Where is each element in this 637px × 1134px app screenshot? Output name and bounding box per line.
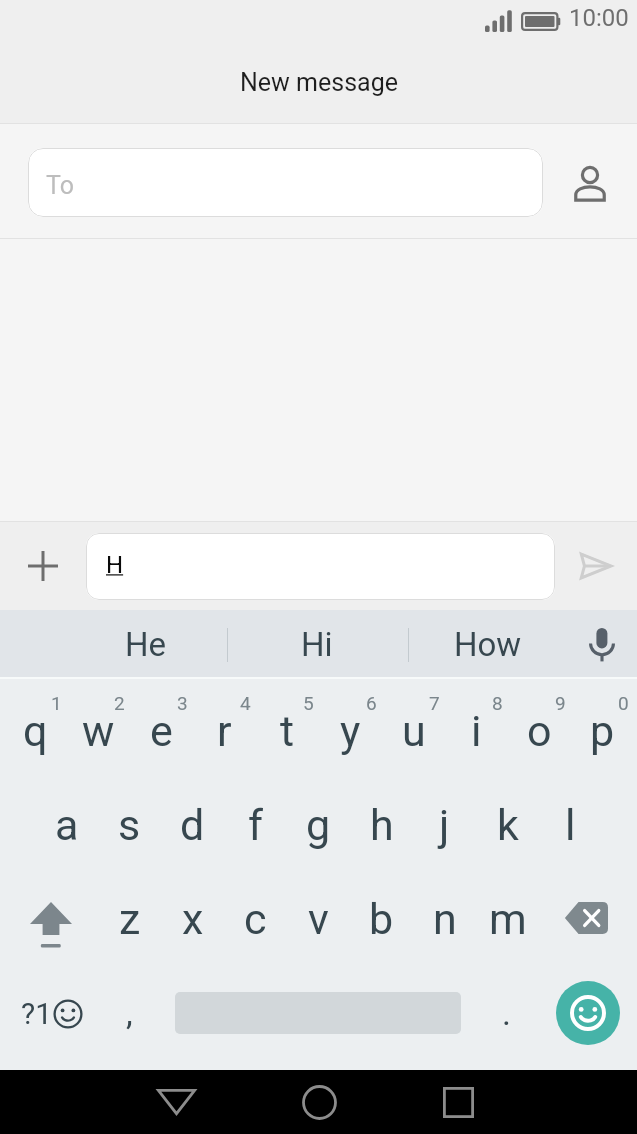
- button[interactable]: t: [256, 683, 319, 779]
- button[interactable]: He: [60, 610, 231, 679]
- button[interactable]: Home: [248, 1070, 390, 1134]
- staticText: s: [118, 800, 141, 850]
- button[interactable]: m: [476, 871, 539, 967]
- button[interactable]: .: [475, 965, 538, 1061]
- button[interactable]: w: [67, 683, 130, 779]
- staticText: 6: [366, 692, 377, 714]
- button[interactable]: g: [287, 777, 350, 873]
- staticText: 9: [555, 692, 566, 714]
- staticText: Hi: [301, 625, 333, 664]
- staticText: d: [180, 800, 205, 850]
- staticText: 3: [177, 692, 188, 714]
- staticText: r: [217, 706, 232, 756]
- staticText: 10:00: [569, 4, 629, 32]
- staticText: 4: [240, 692, 251, 714]
- button[interactable]: n: [413, 871, 476, 967]
- staticText: z: [119, 894, 141, 944]
- staticText: x: [182, 894, 204, 944]
- button[interactable]: s: [98, 777, 161, 873]
- staticText: 0: [618, 692, 629, 714]
- button[interactable]: Backspace: [539, 871, 637, 967]
- button[interactable]: l: [539, 777, 602, 873]
- staticText: How: [454, 625, 522, 664]
- button[interactable]: b: [350, 871, 413, 967]
- staticText: 5: [303, 692, 314, 714]
- staticText: He: [125, 625, 167, 664]
- button[interactable]: f: [224, 777, 287, 873]
- staticText: p: [590, 706, 615, 756]
- button[interactable]: Add contact: [543, 124, 637, 238]
- staticText: To: [46, 171, 74, 200]
- staticText: .: [502, 993, 511, 1033]
- button[interactable]: Emoji: [538, 965, 637, 1061]
- staticText: c: [244, 894, 267, 944]
- button[interactable]: a: [35, 777, 98, 873]
- staticText: o: [527, 706, 552, 756]
- button[interactable]: d: [161, 777, 224, 873]
- staticText: 2: [114, 692, 125, 714]
- staticText: 1: [51, 692, 62, 714]
- button[interactable]: y: [319, 683, 382, 779]
- button[interactable]: Recents: [387, 1070, 529, 1134]
- staticText: 8: [492, 692, 503, 714]
- button[interactable]: q: [4, 683, 67, 779]
- staticText: b: [369, 894, 394, 944]
- staticText: 7: [429, 692, 440, 714]
- button[interactable]: Back: [105, 1070, 247, 1134]
- button[interactable]: x: [161, 871, 224, 967]
- staticText: t: [280, 706, 295, 756]
- staticText: ,: [126, 993, 133, 1033]
- staticText: h: [370, 800, 394, 850]
- button[interactable]: r: [193, 683, 256, 779]
- staticText: New message: [240, 68, 398, 97]
- staticText: H: [106, 551, 124, 579]
- staticText: v: [308, 894, 329, 944]
- button[interactable]: p: [571, 683, 634, 779]
- button[interactable]: z: [98, 871, 161, 967]
- button[interactable]: Add attachment: [0, 522, 86, 610]
- staticText: l: [565, 800, 576, 850]
- staticText: k: [497, 800, 519, 850]
- button[interactable]: v: [287, 871, 350, 967]
- staticText: w: [82, 706, 115, 756]
- button[interactable]: Send: [555, 522, 637, 610]
- staticText: e: [150, 706, 173, 756]
- staticText: g: [306, 800, 331, 850]
- staticText: y: [340, 706, 361, 756]
- button[interactable]: Voice input: [573, 610, 637, 679]
- button[interactable]: h: [350, 777, 413, 873]
- button[interactable]: Symbols and emoji: [0, 965, 98, 1061]
- button[interactable]: How: [402, 610, 573, 679]
- staticText: j: [439, 800, 450, 850]
- button[interactable]: Hi: [231, 610, 402, 679]
- button[interactable]: k: [476, 777, 539, 873]
- button[interactable]: To: [28, 148, 543, 217]
- staticText: q: [23, 706, 48, 756]
- staticText: i: [471, 706, 482, 756]
- button[interactable]: Shift: [0, 871, 98, 967]
- staticText: u: [402, 706, 426, 756]
- button[interactable]: e: [130, 683, 193, 779]
- staticText: f: [248, 800, 263, 850]
- button[interactable]: u: [382, 683, 445, 779]
- staticText: m: [489, 894, 527, 944]
- staticText: a: [55, 800, 79, 850]
- button[interactable]: H: [86, 533, 555, 600]
- button[interactable]: j: [413, 777, 476, 873]
- button[interactable]: o: [508, 683, 571, 779]
- button[interactable]: i: [445, 683, 508, 779]
- button[interactable]: Space: [161, 965, 475, 1061]
- button[interactable]: ,: [98, 965, 161, 1061]
- staticText: n: [433, 894, 457, 944]
- staticText: ?1: [21, 996, 53, 1031]
- button[interactable]: c: [224, 871, 287, 967]
